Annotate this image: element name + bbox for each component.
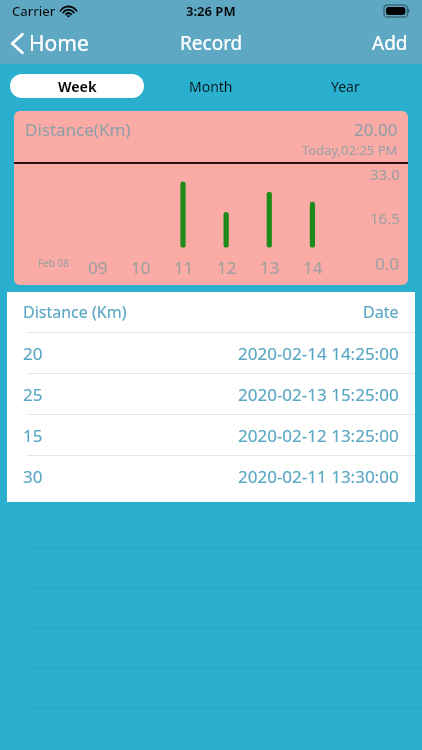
staticText: 25 <box>23 383 43 406</box>
button[interactable]: Year <box>278 74 412 98</box>
staticText: 20.00 <box>354 118 398 141</box>
staticText: Home <box>29 29 89 58</box>
staticText: 30 <box>23 465 43 488</box>
button[interactable]: Home <box>0 25 101 62</box>
staticText: Date <box>363 301 399 323</box>
button[interactable]: 15 <box>7 415 415 455</box>
staticText: 10 <box>131 256 151 279</box>
staticText: Month <box>189 77 233 96</box>
staticText: 09 <box>88 256 108 279</box>
staticText: Distance(Km) <box>25 118 131 141</box>
staticText: 0.0 <box>375 252 400 275</box>
staticText: Record <box>180 30 243 56</box>
staticText: Year <box>331 77 360 96</box>
button[interactable]: 30 <box>7 456 415 496</box>
staticText: 2020-02-12 13:25:00 <box>238 424 399 447</box>
button[interactable]: Week <box>10 74 144 98</box>
staticText: Carrier <box>12 2 56 20</box>
staticText: 2020-02-11 13:30:00 <box>238 465 399 488</box>
staticText: 15 <box>23 424 43 447</box>
staticText: 3:26 PM <box>186 2 236 20</box>
staticText: 33.0 <box>370 164 400 184</box>
button[interactable]: 20 <box>7 333 415 373</box>
staticText: Distance (Km) <box>23 301 127 323</box>
button[interactable]: Add <box>358 24 422 62</box>
staticText: Add <box>372 30 408 56</box>
staticText: Week <box>58 77 97 96</box>
staticText: 12 <box>217 256 237 279</box>
staticText: Feb 08 <box>38 256 70 270</box>
staticText: 13 <box>260 256 280 279</box>
button[interactable]: 25 <box>7 374 415 414</box>
staticText: 2020-02-13 15:25:00 <box>238 383 399 406</box>
staticText: Today,02:25 PM <box>302 141 398 159</box>
staticText: 16.5 <box>370 208 400 228</box>
staticText: 11 <box>174 256 194 279</box>
staticText: 14 <box>303 256 323 279</box>
button[interactable]: Month <box>144 74 278 98</box>
staticText: 20 <box>23 342 43 365</box>
staticText: 2020-02-14 14:25:00 <box>238 342 399 365</box>
